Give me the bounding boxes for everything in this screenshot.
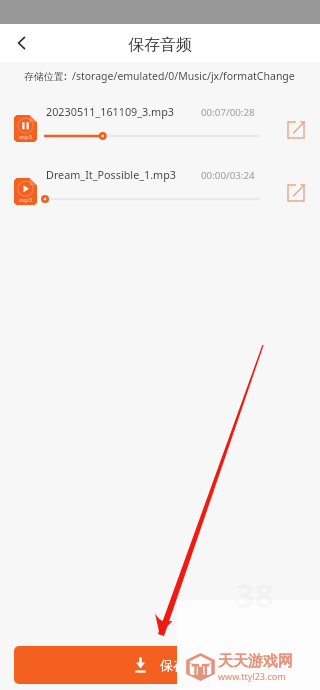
staticText: 天天游戏网 <box>218 652 293 671</box>
staticText: 38 <box>235 572 274 618</box>
staticText: 20230511_161109_3.mp3 <box>46 104 175 119</box>
button[interactable]: Back <box>8 29 36 57</box>
button[interactable]: Rename <box>282 116 310 144</box>
staticText: 保存音频 <box>128 35 192 55</box>
staticText: 保存 <box>160 657 186 673</box>
staticText: mp3 <box>19 196 33 204</box>
button[interactable]: mp3 <box>0 160 320 222</box>
staticText: /storage/emulated/0/Music/jx/formatChang… <box>72 69 295 83</box>
staticText: 存储位置: <box>24 69 67 83</box>
staticText: Dream_It_Possible_1.mp3 <box>46 167 176 182</box>
button[interactable]: 保存 <box>14 646 306 684</box>
staticText: 00:07/00:28 <box>201 106 255 119</box>
staticText: mp3 <box>19 133 33 141</box>
staticText: www.ttyl23.com <box>218 670 286 682</box>
button[interactable]: mp3 <box>0 97 320 159</box>
staticText: 00:00/03:24 <box>201 169 255 182</box>
button[interactable]: Rename <box>282 179 310 207</box>
